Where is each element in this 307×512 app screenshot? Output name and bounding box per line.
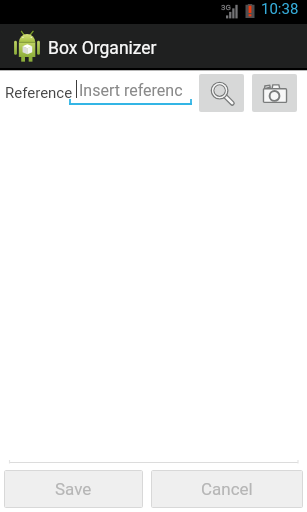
button[interactable]: Cancel	[152, 471, 302, 507]
staticText: Box Organizer	[48, 38, 157, 59]
button[interactable]: Take photo	[252, 74, 297, 112]
staticText: Save	[55, 479, 92, 499]
button[interactable]: Save	[5, 471, 142, 507]
staticText: Insert reference	[79, 81, 183, 100]
button[interactable]: Search	[199, 74, 244, 112]
staticText: 3G	[221, 3, 231, 12]
staticText: Cancel	[201, 479, 253, 499]
staticText: Reference	[5, 84, 73, 102]
button[interactable]: Insert reference	[69, 76, 192, 105]
staticText: 10:38	[261, 0, 299, 18]
